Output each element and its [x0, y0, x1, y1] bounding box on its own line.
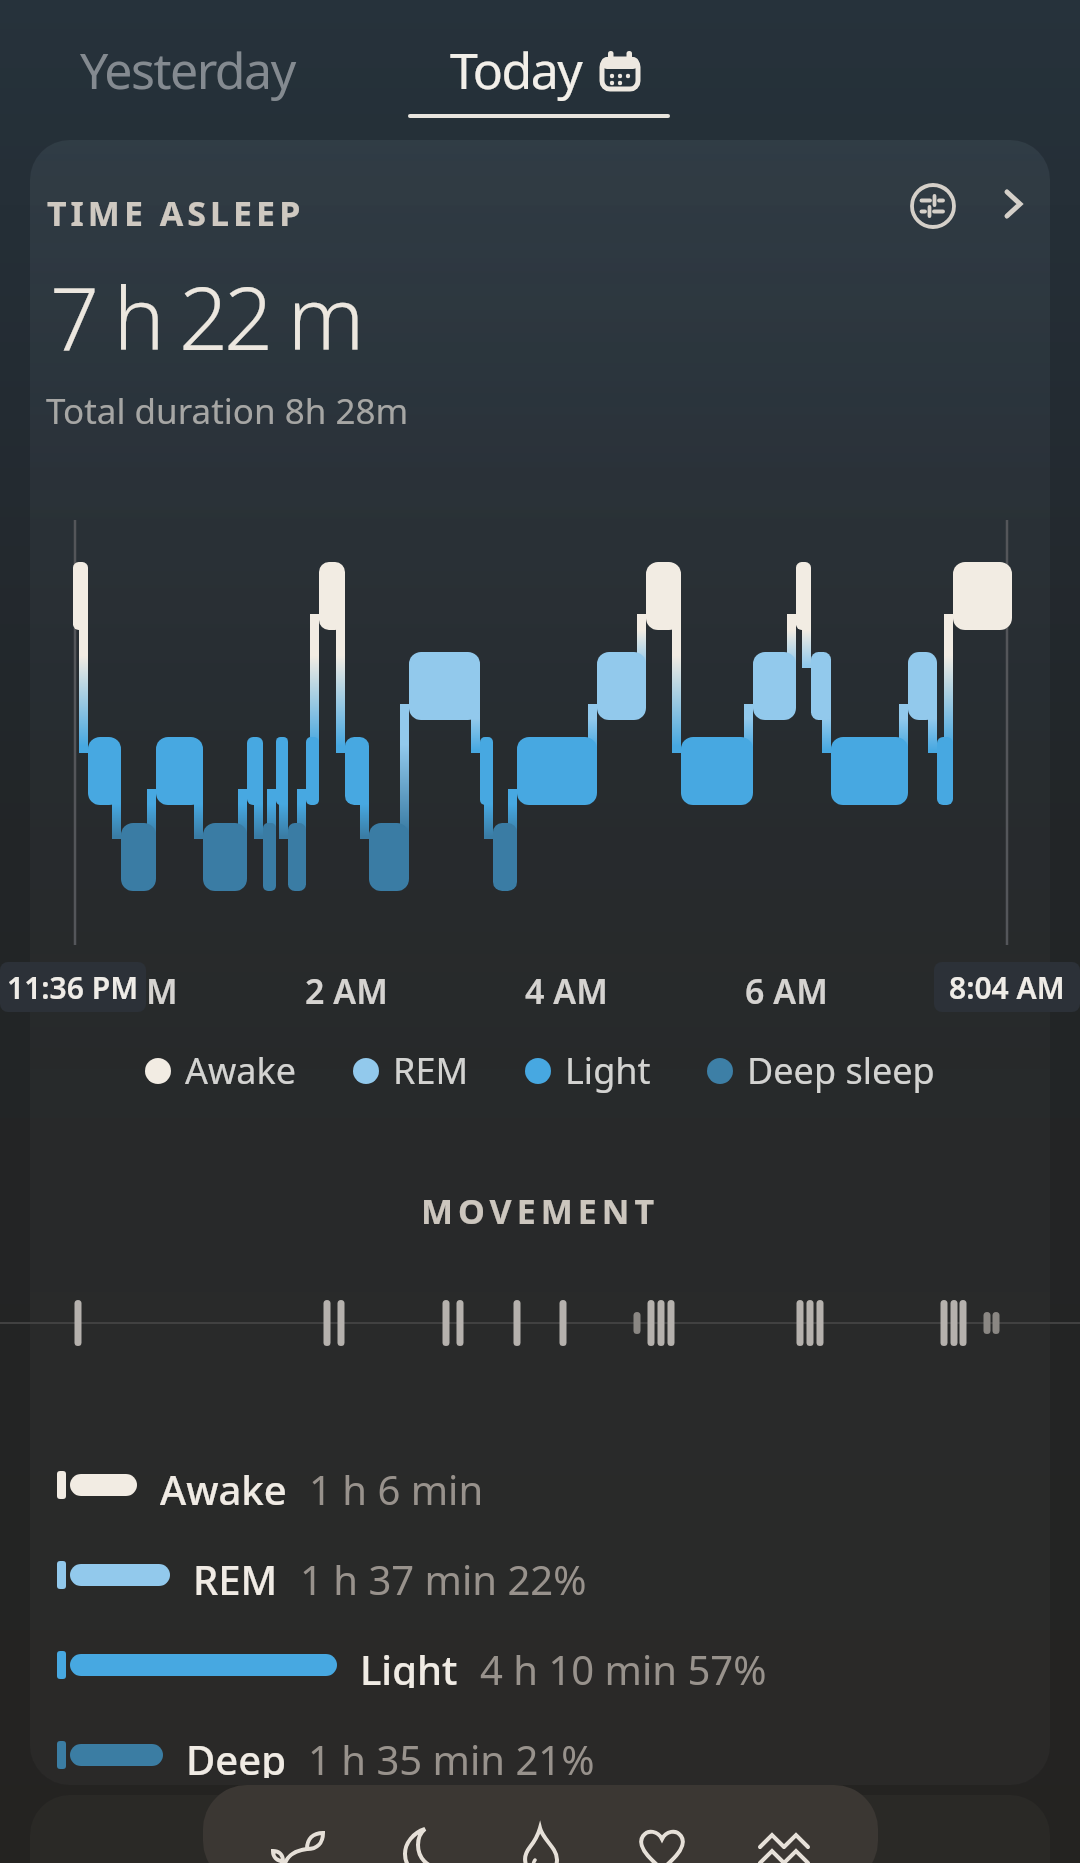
- staticText: 11:36 PM: [7, 967, 139, 1008]
- button[interactable]: [269, 1823, 325, 1863]
- staticText: 7 h 22 m: [50, 258, 361, 375]
- staticText: TIME ASLEEP: [47, 190, 305, 236]
- button[interactable]: [634, 1823, 690, 1863]
- staticText: 4 h 10 min 57%: [480, 1642, 767, 1688]
- staticText: Light: [360, 1642, 458, 1688]
- staticText: Total duration 8h 28m: [46, 387, 409, 435]
- staticText: M: [146, 968, 178, 1014]
- button[interactable]: Today: [450, 36, 640, 104]
- button[interactable]: [391, 1823, 447, 1863]
- staticText: 1 h 6 min: [309, 1462, 484, 1508]
- button[interactable]: [1000, 189, 1028, 217]
- button[interactable]: [513, 1823, 569, 1863]
- staticText: 4 AM: [525, 968, 608, 1014]
- staticText: Light: [565, 1046, 651, 1095]
- staticText: 8:04 AM: [949, 967, 1065, 1008]
- button[interactable]: [756, 1823, 812, 1863]
- staticText: Deep: [186, 1732, 286, 1778]
- button[interactable]: Yesterday: [80, 36, 295, 104]
- staticText: MOVEMENT: [0, 1188, 1080, 1234]
- staticText: REM: [393, 1046, 469, 1095]
- staticText: 1 h 37 min 22%: [300, 1552, 587, 1598]
- staticText: Today: [450, 36, 582, 104]
- staticText: 6 AM: [745, 968, 828, 1014]
- staticText: REM: [193, 1552, 278, 1598]
- staticText: 1 h 35 min 21%: [308, 1732, 595, 1778]
- staticText: Awake: [185, 1046, 297, 1095]
- staticText: Awake: [160, 1462, 287, 1508]
- staticText: 2 AM: [305, 968, 388, 1014]
- button[interactable]: [910, 183, 956, 229]
- staticText: Deep sleep: [747, 1046, 935, 1095]
